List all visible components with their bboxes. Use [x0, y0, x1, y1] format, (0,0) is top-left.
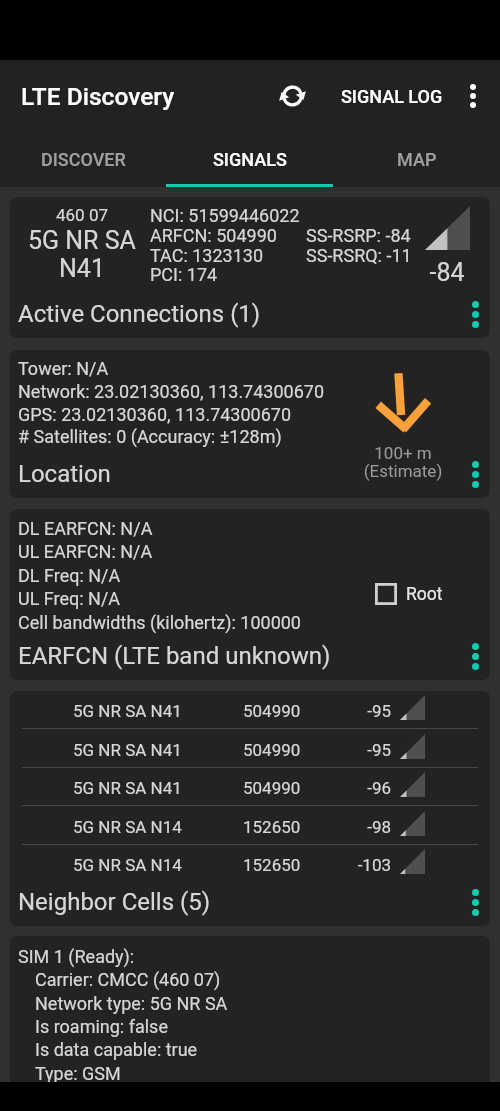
staticText: LTE Discovery [21, 82, 175, 111]
button[interactable]: DL EARFCN: N/A [10, 509, 490, 680]
staticText: 5G NR SA N14 [73, 817, 182, 837]
staticText: SIGNALS [213, 149, 287, 170]
staticText: UL EARFCN: N/A [18, 541, 153, 562]
button[interactable]: Root [375, 583, 443, 605]
staticText: # Satellites: 0 (Accuracy: ±128m) [18, 426, 282, 447]
staticText: -95 [310, 740, 391, 760]
staticText: Active Connections (1) [18, 300, 261, 328]
button[interactable]: 5G NR SA N41 [10, 691, 490, 926]
staticText: 504990 [243, 778, 301, 798]
staticText: 5G NR SA N14 [73, 855, 182, 875]
staticText: Location [18, 460, 111, 488]
staticText: Carrier: CMCC (460 07) [35, 969, 221, 990]
button[interactable]: 460 07 [10, 197, 490, 338]
staticText: -96 [310, 778, 391, 798]
staticText: PCI: 174 [150, 264, 218, 285]
staticText: TAC: 1323130 [150, 245, 264, 266]
button[interactable]: SIM 1 (Ready): [10, 936, 490, 1111]
staticText: -103 [310, 855, 391, 875]
staticText: -95 [310, 701, 391, 721]
button[interactable]: 5G NR SA N14 [10, 845, 490, 884]
staticText: SS-RSRQ: -11 [306, 245, 412, 266]
button[interactable]: 5G NR SA N14 [10, 807, 490, 846]
staticText: Neighbor Cells (5) [18, 888, 211, 916]
staticText: N41 [59, 254, 105, 283]
staticText: 100+ m [343, 443, 463, 463]
staticText: (Estimate) [343, 461, 463, 481]
staticText: EARFCN (LTE band unknown) [18, 642, 331, 670]
staticText: 504990 [243, 740, 301, 760]
button[interactable]: More options [460, 292, 490, 336]
staticText: MAP [397, 149, 437, 170]
staticText: 152650 [243, 855, 301, 875]
button[interactable]: More options [460, 634, 490, 678]
staticText: NCI: 51599446022 [150, 205, 300, 226]
staticText: Type: GSM [35, 1063, 121, 1084]
staticText: 460 07 [56, 205, 108, 225]
staticText: ARFCN: 504990 [150, 225, 277, 246]
staticText: -84 [412, 258, 482, 287]
staticText: Is roaming: false [35, 1016, 168, 1037]
staticText: 5G NR SA [28, 226, 136, 255]
staticText: Cell bandwidths (kilohertz): 100000 [18, 612, 301, 633]
staticText: SIM 1 (Ready): [18, 946, 135, 967]
staticText: DL EARFCN: N/A [18, 518, 153, 539]
staticText: GPS: 23.02130360, 113.74300670 [18, 404, 292, 425]
staticText: DL Freq: N/A [18, 565, 121, 586]
button[interactable]: 5G NR SA N41 [10, 691, 490, 730]
button[interactable]: SIGNALS [166, 132, 333, 187]
staticText: 5G NR SA N41 [73, 778, 182, 798]
staticText: Root [406, 584, 443, 605]
staticText: Network: 23.02130360, 113.74300670 [18, 381, 325, 402]
staticText: UL Freq: N/A [18, 588, 121, 609]
staticText: 5G NR SA N41 [73, 701, 182, 721]
staticText: 504990 [243, 701, 301, 721]
staticText: 5G NR SA N41 [73, 740, 182, 760]
button[interactable]: 5G NR SA N41 [10, 730, 490, 769]
staticText: Network type: 5G NR SA [35, 993, 228, 1014]
button[interactable]: Refresh [270, 74, 314, 118]
staticText: DISCOVER [41, 149, 126, 170]
staticText: 152650 [243, 817, 301, 837]
button[interactable]: 5G NR SA N41 [10, 768, 490, 807]
button[interactable]: MAP [333, 132, 500, 187]
button[interactable]: More options [460, 452, 490, 496]
button[interactable]: Tower: N/A [10, 350, 490, 498]
staticText: SIGNAL LOG [341, 86, 443, 107]
button[interactable]: SIGNAL LOG [333, 74, 451, 119]
staticText: Is data capable: true [35, 1039, 198, 1060]
staticText: SS-RSRP: -84 [306, 225, 411, 246]
button[interactable]: DISCOVER [0, 132, 166, 187]
button[interactable]: More options [460, 880, 490, 924]
staticText: Tower: N/A [18, 358, 109, 379]
button[interactable]: More options [458, 74, 488, 118]
staticText: -98 [310, 817, 391, 837]
